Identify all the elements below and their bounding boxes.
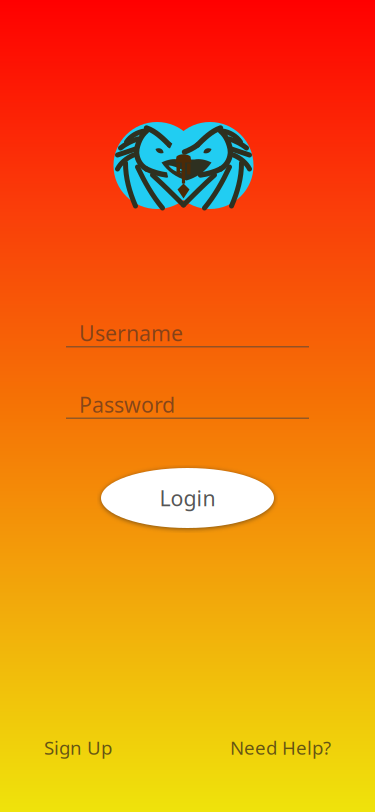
staticText: Login xyxy=(159,484,215,512)
staticText: Password xyxy=(79,390,175,419)
button[interactable]: Need Help? xyxy=(230,735,331,760)
staticText: Need Help? xyxy=(230,735,331,760)
button[interactable]: Sign Up xyxy=(44,735,112,760)
staticText: Sign Up xyxy=(44,735,112,760)
staticText: Username xyxy=(79,319,183,347)
button[interactable]: Login xyxy=(101,468,274,528)
